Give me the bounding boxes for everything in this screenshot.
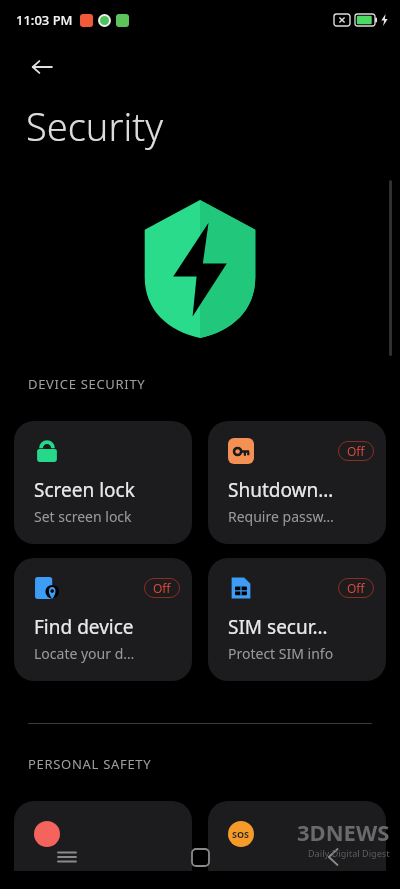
staticText: Shutdown…: [228, 477, 334, 503]
button[interactable]: Off: [208, 558, 386, 681]
button[interactable]: Home: [134, 833, 267, 881]
staticText: Daily Digital Digest: [308, 847, 390, 859]
staticText: Protect SIM info: [228, 644, 334, 663]
button[interactable]: Back: [267, 833, 400, 881]
staticText: Set screen lock: [34, 507, 132, 526]
staticText: 11:03 PM: [16, 11, 73, 29]
staticText: Locate your d…: [34, 644, 135, 663]
staticText: PERSONAL SAFETY: [28, 755, 152, 773]
staticText: Screen lock: [34, 477, 135, 503]
button[interactable]: Off: [208, 421, 386, 544]
button[interactable]: [14, 801, 192, 871]
button[interactable]: Screen lock: [14, 421, 192, 544]
staticText: DEVICE SECURITY: [28, 375, 146, 393]
button[interactable]: Off: [14, 558, 192, 681]
staticText: Off: [153, 580, 171, 596]
staticText: Off: [347, 580, 365, 596]
staticText: 3DNEWS: [297, 817, 390, 847]
staticText: Security: [26, 100, 163, 152]
staticText: Require passw…: [228, 507, 334, 526]
staticText: SIM secur…: [228, 614, 328, 640]
button[interactable]: Back: [20, 45, 64, 89]
staticText: Find device: [34, 614, 134, 640]
button[interactable]: SOS: [208, 801, 386, 871]
button[interactable]: Recent apps: [0, 833, 134, 881]
staticText: Off: [347, 443, 365, 459]
staticText: SOS: [232, 828, 250, 840]
